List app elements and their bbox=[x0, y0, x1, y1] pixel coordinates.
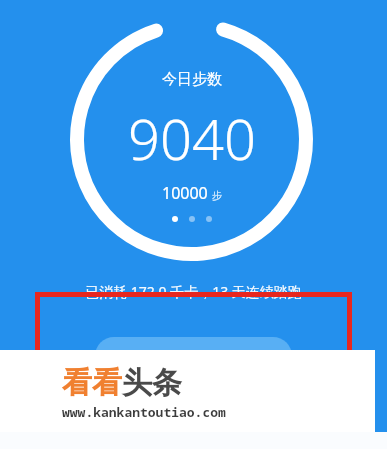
staticText: 已消耗 172.0 千卡，13 天连续踏跑 bbox=[0, 282, 387, 301]
staticText: www.kankantoutiao.com bbox=[62, 403, 226, 421]
staticText: 步 bbox=[212, 189, 222, 202]
staticText: 头条 bbox=[122, 364, 182, 402]
staticText: 9040 bbox=[128, 100, 256, 176]
staticText: 10000 bbox=[162, 182, 208, 204]
staticText: 看看 bbox=[62, 364, 122, 402]
button[interactable] bbox=[95, 337, 292, 375]
staticText: 今日步数 bbox=[162, 70, 222, 89]
button[interactable]: 今日步数进度 bbox=[70, 18, 313, 261]
